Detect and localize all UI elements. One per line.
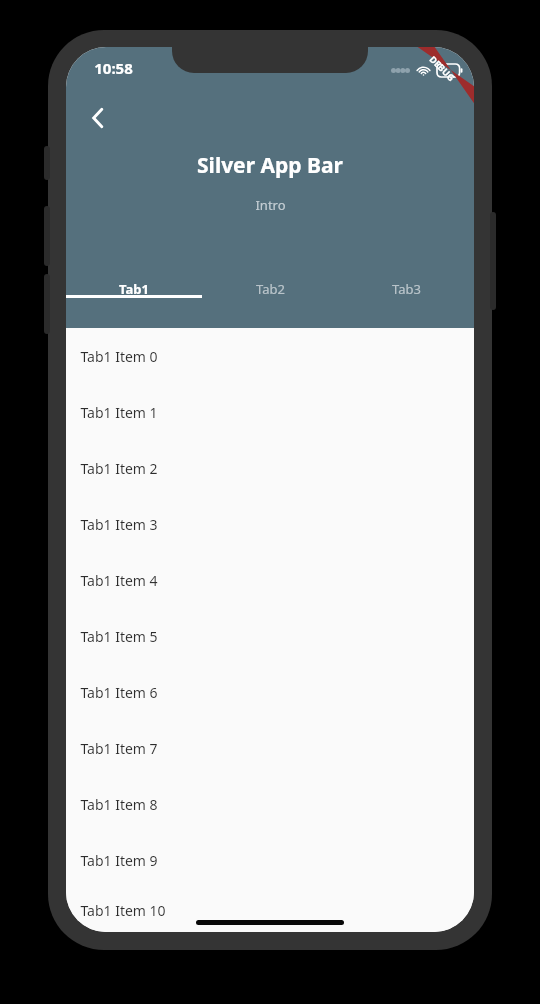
staticText: Tab1 Item 7 bbox=[80, 739, 158, 758]
staticText: Tab3 bbox=[392, 280, 421, 298]
button[interactable]: Tab1 bbox=[66, 280, 202, 298]
button[interactable]: Tab1 Item 10 bbox=[66, 888, 474, 932]
staticText: 10:58 bbox=[94, 58, 133, 78]
staticText: Tab1 Item 3 bbox=[80, 515, 158, 534]
staticText: Tab1 bbox=[119, 280, 149, 298]
staticText: Tab1 Item 0 bbox=[80, 347, 158, 366]
button[interactable]: Tab2 bbox=[202, 280, 338, 298]
button[interactable]: Back bbox=[74, 94, 122, 142]
button[interactable]: Tab1 Item 2 bbox=[66, 440, 474, 496]
button[interactable]: Tab1 Item 7 bbox=[66, 720, 474, 776]
staticText: Tab1 Item 9 bbox=[80, 851, 158, 870]
staticText: Tab1 Item 8 bbox=[80, 795, 158, 814]
staticText: Tab1 Item 2 bbox=[80, 459, 158, 478]
staticText: Silver App Bar bbox=[197, 151, 343, 180]
staticText: Tab1 Item 1 bbox=[80, 403, 158, 422]
staticText: DEBUG bbox=[427, 53, 458, 83]
button[interactable]: Tab3 bbox=[338, 280, 474, 298]
button[interactable]: Tab1 Item 5 bbox=[66, 608, 474, 664]
staticText: Intro bbox=[255, 196, 286, 214]
button[interactable]: Tab1 Item 1 bbox=[66, 384, 474, 440]
staticText: Tab1 Item 6 bbox=[80, 683, 158, 702]
button[interactable]: Tab1 Item 0 bbox=[66, 328, 474, 384]
staticText: Tab1 Item 4 bbox=[80, 571, 158, 590]
staticText: Tab1 Item 10 bbox=[80, 901, 166, 920]
button[interactable]: Tab1 Item 3 bbox=[66, 496, 474, 552]
button[interactable]: Tab1 Item 4 bbox=[66, 552, 474, 608]
button[interactable]: Tab1 Item 6 bbox=[66, 664, 474, 720]
staticText: Tab2 bbox=[256, 280, 285, 298]
button[interactable]: Tab1 Item 8 bbox=[66, 776, 474, 832]
button[interactable]: Tab1 Item 9 bbox=[66, 832, 474, 888]
staticText: Tab1 Item 5 bbox=[80, 627, 158, 646]
